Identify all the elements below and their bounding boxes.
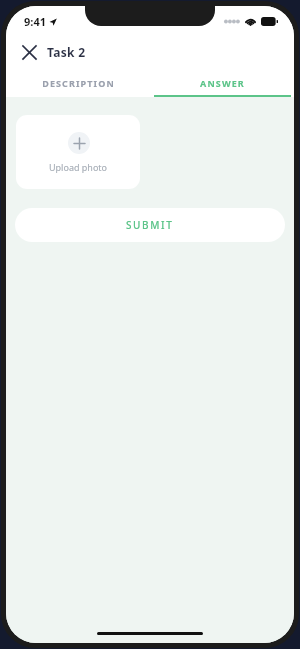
- button[interactable]: Close: [16, 39, 42, 65]
- staticText: DESCRIPTION: [42, 77, 115, 89]
- button[interactable]: SUBMIT: [15, 208, 285, 242]
- staticText: ANSWER: [200, 77, 245, 89]
- button[interactable]: Upload photo: [16, 115, 140, 189]
- staticText: SUBMIT: [126, 218, 174, 232]
- staticText: Task 2: [47, 44, 86, 60]
- staticText: 9:41: [24, 14, 46, 29]
- staticText: Upload photo: [49, 161, 108, 173]
- button[interactable]: ANSWER: [150, 68, 294, 97]
- button[interactable]: DESCRIPTION: [6, 68, 150, 97]
